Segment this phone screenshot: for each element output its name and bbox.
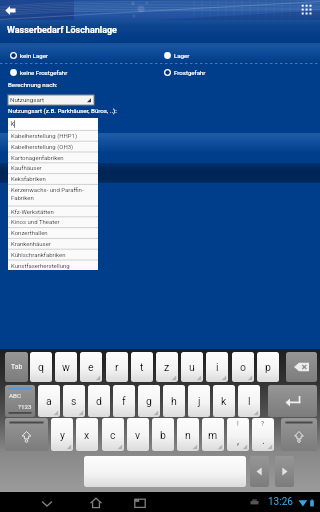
staticText: y — [60, 429, 65, 441]
staticText: o — [240, 361, 246, 373]
button[interactable]: f — [113, 385, 135, 417]
staticText: . — [262, 434, 265, 446]
staticText: n — [185, 429, 191, 441]
button[interactable]: Kabelherstellung (OH3) — [8, 141, 98, 152]
button[interactable]: key — [5, 385, 35, 417]
button[interactable]: Krankenhäuser — [8, 238, 98, 249]
button[interactable]: Kinos und Theater — [8, 216, 98, 227]
button[interactable]: Back — [40, 496, 54, 510]
button[interactable]: o — [232, 352, 254, 382]
staticText: Kinos und Theater — [11, 218, 101, 225]
staticText: Kaufhäuser — [11, 164, 101, 171]
button[interactable]: Lager — [163, 49, 313, 62]
button[interactable]: e — [80, 352, 102, 382]
staticText: Tab — [11, 363, 23, 371]
button[interactable]: Kabelherstellung (HHP1) — [8, 130, 98, 141]
button[interactable]: Recent apps — [133, 496, 147, 510]
staticText: x — [84, 429, 90, 441]
staticText: keine Frostgefahr — [20, 69, 68, 76]
button[interactable]: Home — [89, 496, 103, 510]
button[interactable]: Kfz-Werkstätten — [8, 206, 98, 217]
staticText: j — [198, 395, 201, 407]
staticText: ? — [261, 420, 265, 428]
button[interactable]: Back — [4, 4, 17, 17]
button[interactable]: . — [252, 418, 274, 451]
button[interactable]: Kaufhäuser — [8, 162, 98, 173]
staticText: Keksfabriken — [11, 175, 101, 182]
button[interactable]: h — [163, 385, 185, 417]
button[interactable]: p — [257, 352, 279, 382]
staticText: Kühlschrankfabriken — [11, 251, 101, 258]
staticText: Nutzungsart (z.B. Parkhäuser, Büros, ..)… — [8, 107, 117, 114]
button[interactable]: Konzerthallen — [8, 227, 98, 238]
button[interactable]: Frostgefahr — [163, 66, 313, 79]
staticText: ABC — [9, 392, 21, 399]
button[interactable]: key — [268, 385, 317, 417]
button[interactable]: y — [51, 418, 73, 451]
staticText: h — [171, 395, 177, 407]
staticText: Kabelherstellung (OH3) — [11, 143, 101, 150]
staticText: Krankenhäuser — [11, 240, 101, 247]
button[interactable]: g — [138, 385, 160, 417]
staticText: v — [135, 429, 141, 441]
staticText: , — [237, 434, 240, 446]
staticText: Kfz-Werkstätten — [11, 208, 101, 215]
staticText: Kerzenwachs- und Paraffin-Fabriken — [11, 186, 101, 201]
staticText: b — [160, 429, 166, 441]
button[interactable]: key — [286, 352, 317, 382]
button[interactable]: t — [131, 352, 153, 382]
button[interactable]: v — [127, 418, 149, 451]
button[interactable]: c — [102, 418, 124, 451]
button[interactable]: keine Frostgefahr — [9, 66, 159, 79]
button[interactable]: d — [88, 385, 110, 417]
staticText: w — [62, 361, 70, 373]
staticText: Berechnung nach: — [8, 81, 58, 88]
button[interactable]: j — [188, 385, 210, 417]
button[interactable]: key — [84, 456, 246, 487]
button[interactable]: Kunstfaserherstellung — [8, 260, 98, 271]
staticText: ?123 — [18, 403, 32, 410]
button[interactable]: x — [76, 418, 98, 451]
button[interactable]: k — [213, 385, 235, 417]
button[interactable]: a — [38, 385, 60, 417]
button[interactable]: b — [152, 418, 174, 451]
button[interactable]: n — [177, 418, 199, 451]
staticText: Konzerthallen — [11, 229, 101, 236]
staticText: 13:26 — [268, 496, 293, 508]
staticText: z — [164, 361, 170, 373]
staticText: s — [71, 395, 77, 407]
staticText: m — [208, 429, 218, 441]
staticText: k — [11, 120, 15, 128]
button[interactable]: Apps — [301, 4, 313, 16]
button[interactable]: key — [250, 456, 269, 487]
staticText: Wasserbedarf Löschanlage — [7, 25, 117, 36]
button[interactable]: m — [202, 418, 224, 451]
staticText: ! — [237, 420, 239, 428]
button[interactable]: u — [181, 352, 203, 382]
button[interactable]: , — [227, 418, 249, 451]
button[interactable]: Keksfabriken — [8, 173, 98, 184]
button[interactable]: Tab — [5, 352, 28, 382]
button[interactable]: q — [30, 352, 52, 382]
button[interactable]: k — [8, 118, 98, 130]
staticText: u — [189, 361, 195, 373]
staticText: Kartonagenfabriken — [11, 154, 101, 161]
button[interactable]: Kartonagenfabriken — [8, 152, 98, 163]
staticText: t — [140, 361, 144, 373]
button[interactable]: key — [5, 418, 48, 451]
staticText: Frostgefahr — [174, 69, 206, 76]
button[interactable]: Kerzenwachs- und Paraffin-Fabriken — [8, 184, 98, 206]
button[interactable]: Nutzungsart — [8, 95, 94, 105]
button[interactable]: r — [106, 352, 128, 382]
staticText: k — [221, 395, 227, 407]
button[interactable]: key — [275, 456, 294, 487]
button[interactable]: s — [63, 385, 85, 417]
button[interactable]: w — [55, 352, 77, 382]
button[interactable]: z — [156, 352, 178, 382]
button[interactable]: kein Lager — [9, 49, 159, 62]
staticText: c — [110, 429, 116, 441]
button[interactable]: i — [206, 352, 228, 382]
button[interactable]: key — [281, 418, 317, 451]
button[interactable]: l — [238, 385, 260, 417]
button[interactable]: Kühlschrankfabriken — [8, 249, 98, 260]
